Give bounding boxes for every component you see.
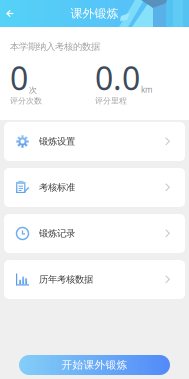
staticText: 本学期纳入考核的数据 — [10, 41, 100, 52]
staticText: 0 — [10, 56, 28, 99]
button[interactable]: 开始课外锻炼 — [19, 355, 170, 375]
staticText: 课外锻炼 — [70, 6, 118, 21]
staticText: km — [141, 84, 152, 95]
staticText: 考核标准 — [39, 182, 75, 193]
staticText: 评分次数 — [10, 96, 42, 106]
staticText: 开始课外锻炼 — [61, 358, 127, 371]
staticText: 锻炼记录 — [39, 228, 75, 239]
staticText: 评分里程 — [95, 96, 127, 106]
staticText: 历年考核数据 — [39, 274, 93, 285]
staticText: 0.0 — [95, 56, 140, 99]
button[interactable]: 锻炼设置 — [4, 122, 185, 161]
staticText: 次 — [29, 85, 37, 95]
staticText: 锻炼设置 — [39, 136, 75, 147]
button[interactable]: 历年考核数据 — [4, 260, 185, 299]
button[interactable]: 返回 — [0, 1, 23, 25]
button[interactable]: 锻炼记录 — [4, 214, 185, 253]
button[interactable]: 考核标准 — [4, 168, 185, 207]
